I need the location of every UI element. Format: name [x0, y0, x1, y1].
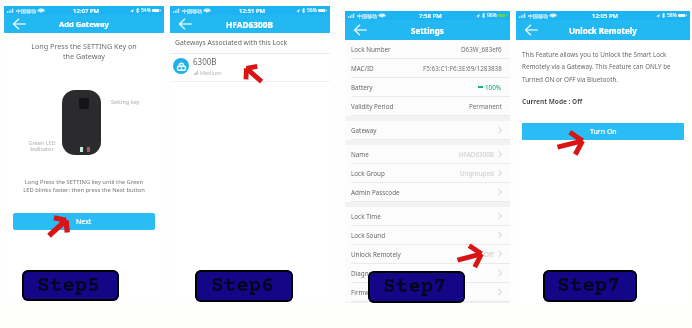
staticText: F5:63:C1:F6:3E:69/1283838 — [423, 64, 502, 73]
button[interactable]: Firmware — [345, 283, 510, 302]
staticText: Unlock Remotely — [569, 25, 637, 36]
staticText: Lock Sound — [351, 231, 386, 240]
button[interactable]: Next — [13, 213, 155, 230]
button[interactable]: Lock Time — [345, 207, 510, 226]
staticText: Firmware — [351, 288, 379, 297]
staticText: Step5 — [37, 275, 100, 299]
button[interactable]: Back — [172, 15, 198, 33]
staticText: Name — [351, 150, 369, 159]
staticText: 54% — [141, 7, 151, 14]
button[interactable]: Name — [345, 145, 510, 164]
staticText: Setting key — [111, 98, 140, 105]
staticText: 12:07 PM — [73, 7, 100, 15]
staticText: 12:05 PM — [592, 12, 619, 20]
staticText: Ungrouped — [460, 169, 494, 178]
button[interactable]: Back — [6, 15, 32, 33]
staticText: Long Press the SETTING Key on the Gatewa… — [4, 41, 164, 61]
staticText: Next — [76, 217, 92, 227]
staticText: 100% — [485, 83, 502, 92]
button[interactable]: Back — [518, 20, 544, 40]
button[interactable]: Lock Sound — [345, 226, 510, 245]
button[interactable]: Lock Group — [345, 164, 510, 183]
staticText: HFAD6300B — [226, 19, 274, 30]
staticText: Long Press the SETTING key until the Gre… — [4, 178, 164, 194]
staticText: Add Gateway — [59, 19, 109, 29]
button[interactable]: Back — [347, 20, 373, 40]
staticText: Lock Number — [351, 45, 391, 54]
staticText: Permanent — [469, 102, 502, 111]
staticText: 56% — [307, 7, 317, 14]
staticText: This Feature allows you to Unlock the Sm… — [522, 50, 671, 84]
staticText: Step6 — [211, 275, 274, 299]
staticText: Validity Period — [351, 102, 394, 111]
button[interactable]: Diagnosis — [345, 264, 510, 283]
staticText: Lock Group — [351, 169, 385, 178]
staticText: Step7 — [383, 276, 446, 300]
staticText: Gateway — [351, 126, 377, 135]
staticText: HFAD6300B — [459, 150, 494, 159]
staticText: Gateways Associated with this Lock — [175, 38, 288, 47]
staticText: Medium — [200, 69, 222, 76]
button[interactable]: Unlock Remotely — [345, 245, 510, 264]
staticText: 中国移动 — [182, 8, 202, 14]
staticText: Turn On — [590, 127, 617, 137]
staticText: Green LED Indicator — [28, 139, 56, 153]
staticText: Unlock Remotely — [351, 250, 401, 259]
staticText: Current Mode : Off — [522, 97, 583, 106]
staticText: MAC/ID — [351, 64, 374, 73]
staticText: Step7 — [557, 275, 620, 299]
button[interactable]: Admin Passcode — [345, 183, 510, 202]
staticText: 7:58 PM — [419, 12, 442, 20]
staticText: D63W_683ef6 — [461, 45, 502, 54]
staticText: 58% — [667, 12, 677, 19]
button[interactable]: 6300B — [170, 54, 330, 77]
staticText: Admin Passcode — [351, 188, 400, 197]
button[interactable]: Gateway — [345, 121, 510, 140]
staticText: 中国移动 — [16, 8, 36, 14]
staticText: Diagnosis — [351, 269, 380, 278]
staticText: Off — [484, 250, 494, 259]
staticText: Lock Time — [351, 212, 381, 221]
staticText: 6300B — [193, 56, 217, 67]
staticText: Settings — [411, 25, 444, 36]
staticText: 中国移动 — [357, 13, 377, 19]
staticText: 96% — [487, 12, 497, 19]
staticText: Battery — [351, 83, 373, 92]
staticText: 中国移动 — [528, 13, 548, 19]
button[interactable]: Turn On — [522, 123, 684, 140]
staticText: 12:51 PM — [239, 7, 266, 15]
